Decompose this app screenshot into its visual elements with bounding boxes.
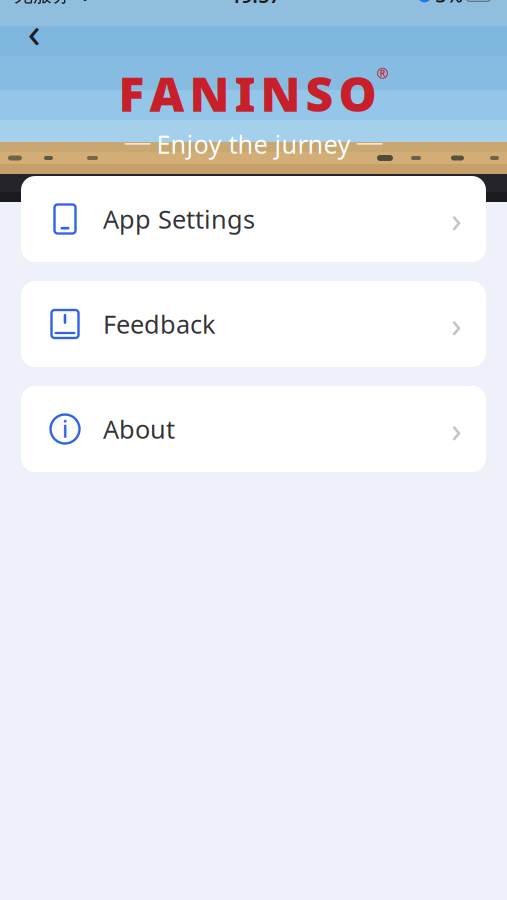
staticText: ® [376,63,388,83]
staticText: N [260,61,300,125]
staticText: 无服务 [14,0,71,7]
staticText: F [118,61,144,125]
button[interactable]: i [21,386,486,472]
staticText: S [305,61,333,125]
staticText: 19:57 [230,0,280,9]
staticText: Enjoy the jurney [156,127,350,161]
staticText: › [451,301,462,347]
staticText: Feedback [103,307,216,341]
button[interactable]: Back [12,9,56,53]
staticText: ➤ [420,0,429,1]
staticText: › [451,196,462,242]
staticText: N [189,61,229,125]
staticText: About [103,412,175,446]
button[interactable]: Feedback [21,281,486,367]
staticText: App Settings [103,202,255,236]
staticText: › [451,406,462,452]
button[interactable]: App Settings [21,176,486,262]
staticText: I [234,61,255,125]
staticText: ‹ [27,3,40,60]
staticText: O [338,61,376,125]
staticText: 3% [435,0,462,8]
staticText: A [149,61,184,125]
staticText: i [62,414,68,444]
